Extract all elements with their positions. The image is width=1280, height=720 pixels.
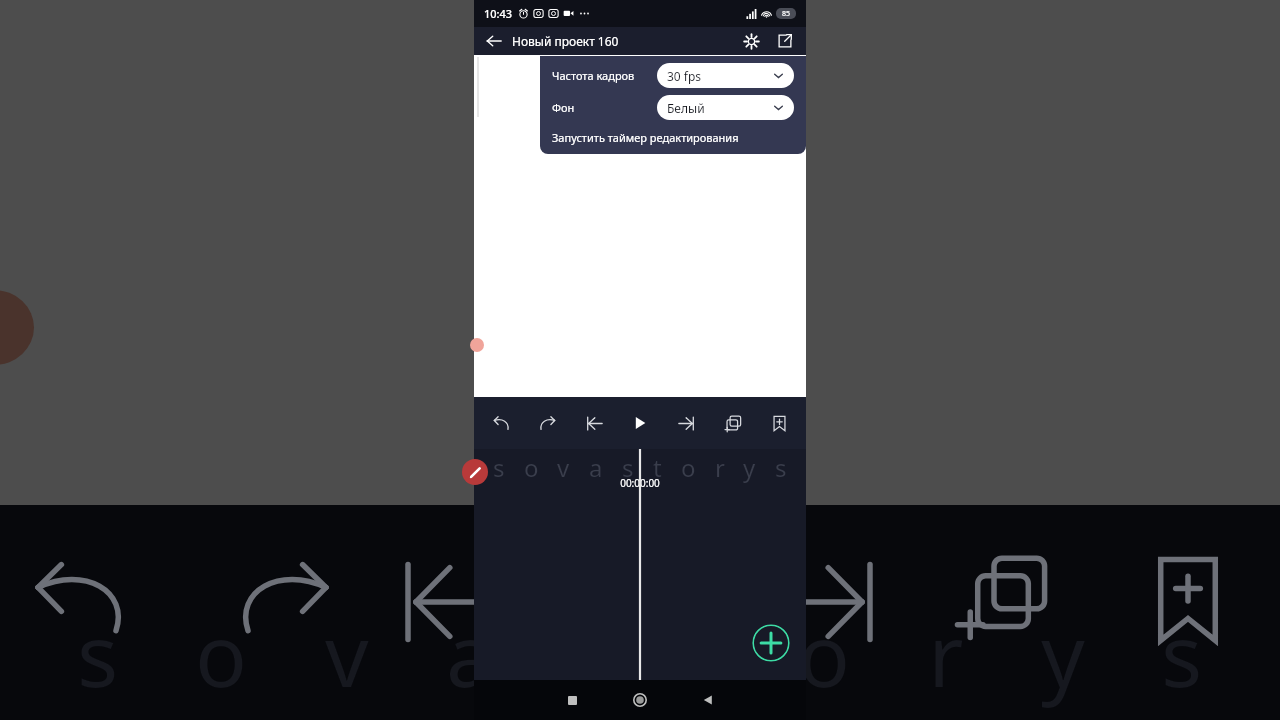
staticText: y xyxy=(1041,595,1085,712)
staticText: Частота кадров xyxy=(552,68,657,83)
staticText: Запустить таймер редактирования xyxy=(552,130,739,145)
button[interactable]: Recents xyxy=(552,680,592,720)
staticText: s xyxy=(622,451,634,484)
button[interactable]: Redo xyxy=(532,408,562,438)
staticText: t xyxy=(653,451,662,484)
button[interactable]: Undo xyxy=(486,408,516,438)
staticText: s xyxy=(571,595,613,712)
button[interactable]: 30 fps xyxy=(657,63,794,88)
button[interactable]: Back xyxy=(688,680,728,720)
button[interactable]: Settings xyxy=(738,28,764,54)
staticText: o xyxy=(524,451,539,484)
staticText: y xyxy=(743,451,756,484)
staticText: Новый проект 160 xyxy=(512,33,619,49)
staticText: s xyxy=(77,595,119,712)
button[interactable]: Back xyxy=(482,29,506,53)
button[interactable]: Skip to end xyxy=(671,408,701,438)
staticText: 30 fps xyxy=(667,68,702,84)
staticText: o xyxy=(195,595,248,712)
staticText: r xyxy=(715,451,725,484)
button[interactable]: Edit xyxy=(462,459,488,485)
staticText: v xyxy=(325,595,369,712)
staticText: 85 xyxy=(782,9,791,19)
staticText: r xyxy=(928,595,964,712)
staticText: 10:43 xyxy=(484,6,513,21)
staticText: s xyxy=(1161,595,1203,712)
button[interactable]: Home xyxy=(620,680,660,720)
button[interactable]: Play xyxy=(625,408,655,438)
staticText: v xyxy=(557,451,570,484)
staticText: 00:00:00 xyxy=(620,476,660,490)
button[interactable]: Skip to start xyxy=(579,408,609,438)
button[interactable]: Белый xyxy=(657,95,794,120)
staticText: Фон xyxy=(552,100,657,115)
staticText: a xyxy=(589,451,603,484)
button[interactable]: Bookmark xyxy=(764,408,794,438)
staticText: t xyxy=(690,595,722,712)
staticText: a xyxy=(446,595,495,712)
staticText: s xyxy=(775,451,787,484)
staticText: s xyxy=(493,451,505,484)
staticText: Белый xyxy=(667,100,705,116)
staticText: o xyxy=(681,451,696,484)
staticText: o xyxy=(798,595,851,712)
button[interactable]: Duplicate xyxy=(718,408,748,438)
button[interactable]: Add xyxy=(752,624,790,662)
button[interactable]: Запустить таймер редактирования xyxy=(552,128,794,147)
button[interactable]: Export xyxy=(772,28,798,54)
